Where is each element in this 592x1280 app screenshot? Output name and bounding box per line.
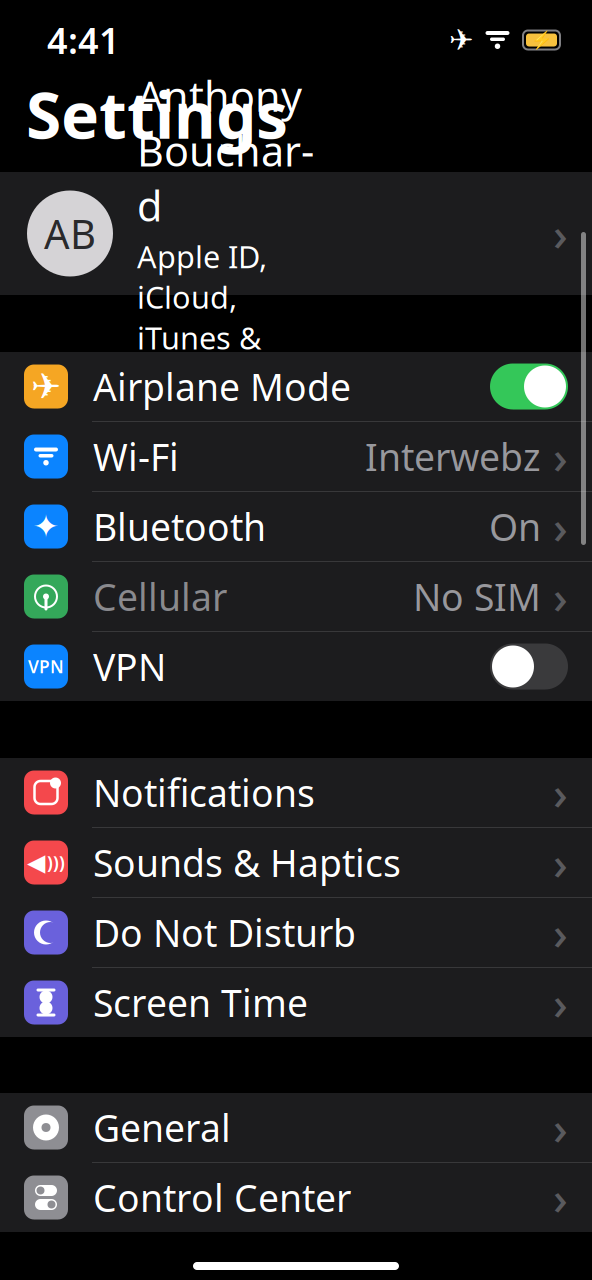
staticText: ◀: [27, 849, 45, 876]
button[interactable]: Wi-Fi: [0, 422, 592, 491]
button[interactable]: AB: [0, 172, 592, 295]
button[interactable]: Control Center: [0, 1163, 592, 1232]
staticText: ✈: [31, 366, 61, 407]
staticText: Notifications: [93, 768, 315, 817]
staticText: ›: [553, 762, 568, 823]
staticText: 4:41: [47, 16, 120, 64]
staticText: ›: [553, 832, 568, 893]
button[interactable]: General: [0, 1093, 592, 1162]
staticText: Do Not Disturb: [93, 908, 356, 957]
staticText: ›: [553, 203, 568, 264]
staticText: On: [489, 502, 541, 551]
staticText: Cellular: [93, 572, 227, 621]
button[interactable]: Notifications: [0, 758, 592, 827]
staticText: Settings: [26, 71, 288, 156]
button[interactable]: ◀: [0, 828, 592, 897]
staticText: Anthony Bouchard: [137, 68, 314, 233]
button[interactable]: ✈: [0, 352, 592, 421]
button[interactable]: Screen Time: [0, 968, 592, 1037]
staticText: ›: [553, 972, 568, 1033]
button[interactable]: ✦: [0, 492, 592, 561]
button[interactable]: VPN: [0, 632, 592, 701]
staticText: General: [93, 1103, 231, 1152]
staticText: ✈: [449, 23, 474, 57]
staticText: ⚡: [530, 30, 552, 50]
staticText: ›: [553, 496, 568, 557]
staticText: VPN: [28, 655, 64, 678]
staticText: Sounds & Haptics: [93, 838, 401, 887]
staticText: ›: [553, 902, 568, 963]
staticText: Bluetooth: [93, 502, 266, 551]
staticText: Control Center: [93, 1173, 351, 1222]
staticText: ))): [47, 851, 65, 874]
staticText: AB: [44, 207, 96, 260]
staticText: ✦: [32, 508, 59, 545]
staticText: Airplane Mode: [93, 362, 351, 411]
button[interactable]: Do Not Disturb: [0, 898, 592, 967]
staticText: Screen Time: [93, 978, 308, 1027]
staticText: VPN: [93, 642, 166, 691]
staticText: No SIM: [413, 572, 541, 621]
staticText: Apple ID, iCloud, iTunes & App Store: [137, 236, 279, 399]
staticText: ›: [553, 566, 568, 627]
staticText: Wi-Fi: [93, 432, 179, 481]
staticText: ›: [553, 1097, 568, 1158]
staticText: ›: [553, 1167, 568, 1228]
staticText: ›: [553, 426, 568, 487]
button[interactable]: Cellular: [0, 562, 592, 631]
staticText: Interwebz: [365, 432, 541, 481]
